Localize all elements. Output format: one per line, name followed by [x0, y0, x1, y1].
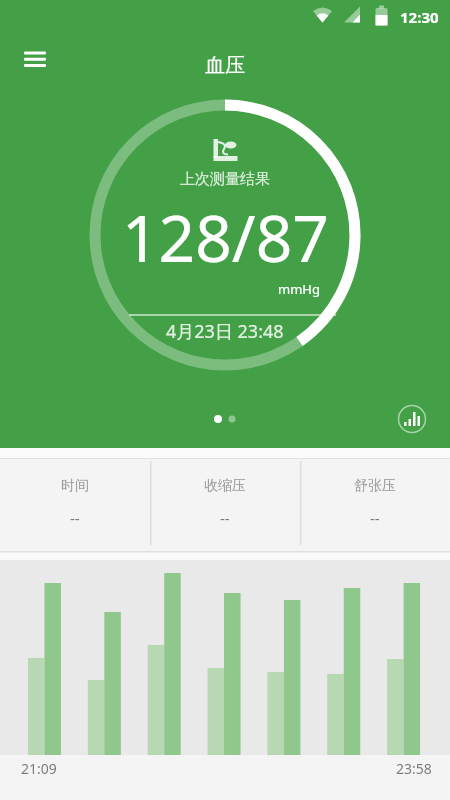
- button[interactable]: --: [0, 508, 150, 528]
- button[interactable]: [394, 401, 430, 437]
- staticText: --: [370, 508, 380, 528]
- button[interactable]: [12, 45, 56, 89]
- staticText: 12:30: [400, 7, 439, 27]
- staticText: 舒张压: [354, 477, 396, 495]
- staticText: 4月23日 23:48: [166, 319, 284, 344]
- staticText: --: [220, 508, 230, 528]
- staticText: mmHg: [278, 280, 320, 298]
- staticText: 血压: [205, 53, 245, 78]
- button[interactable]: --: [300, 508, 450, 528]
- staticText: 收缩压: [204, 477, 246, 495]
- staticText: 上次测量结果: [180, 170, 270, 189]
- staticText: --: [70, 508, 80, 528]
- staticText: 128/87: [122, 194, 329, 281]
- button[interactable]: --: [150, 508, 300, 528]
- staticText: 时间: [61, 477, 89, 495]
- staticText: 21:09: [21, 759, 57, 778]
- staticText: 23:58: [396, 759, 432, 778]
